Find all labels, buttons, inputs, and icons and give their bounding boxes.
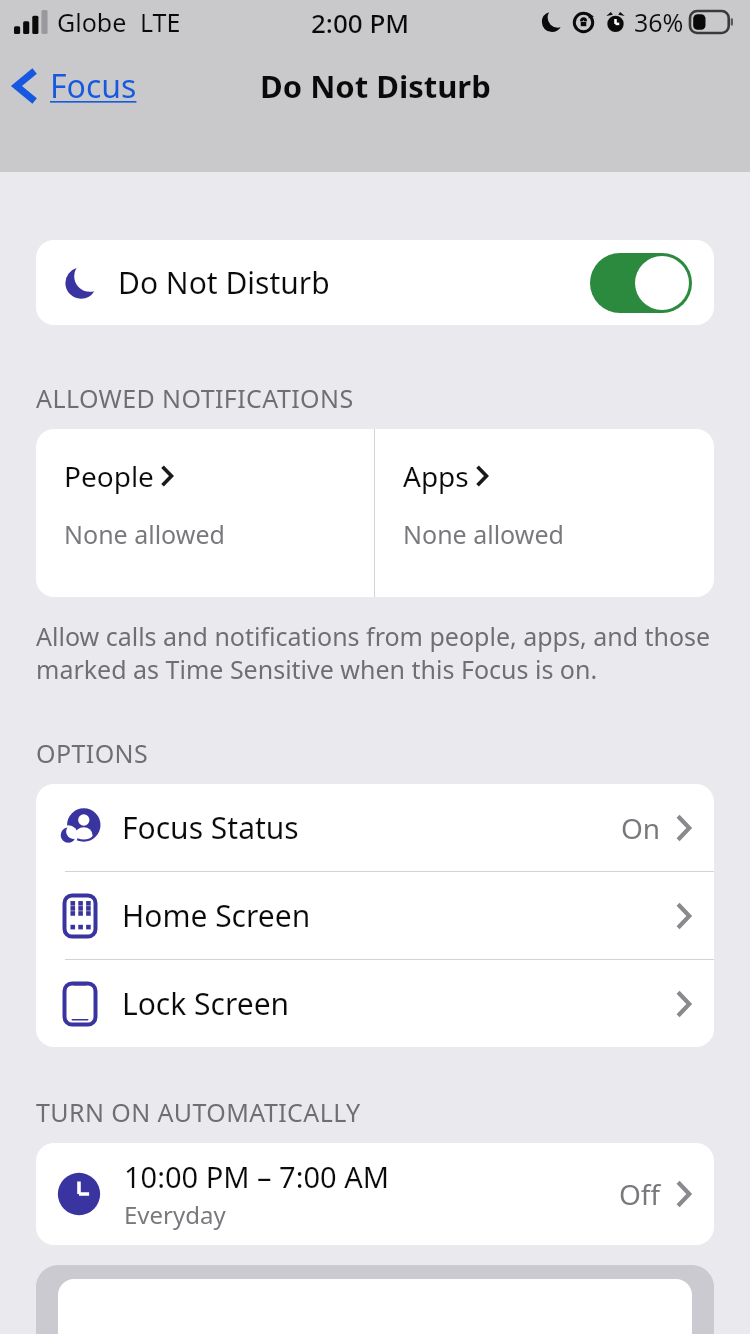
button[interactable]: Focus Status: [36, 784, 714, 871]
staticText: LTE: [140, 5, 181, 39]
button[interactable]: Apps: [375, 429, 714, 597]
staticText: 10:00 PM – 7:00 AM: [124, 1157, 390, 1196]
staticText: None allowed: [403, 517, 564, 551]
staticText: ALLOWED NOTIFICATIONS: [36, 381, 354, 415]
staticText: Focus Status: [122, 807, 299, 848]
staticText: Off: [619, 1175, 661, 1213]
other: Lock Screen: [63, 982, 97, 1026]
staticText: Everyday: [124, 1198, 226, 1231]
button[interactable]: Do Not Disturb toggle, on: [590, 253, 692, 313]
staticText: Lock Screen: [122, 983, 290, 1024]
staticText: On: [621, 809, 661, 847]
staticText: OPTIONS: [36, 736, 149, 770]
staticText: Apps: [403, 457, 469, 495]
staticText: 2:00 PM: [311, 5, 410, 40]
staticText: Do Not Disturb: [260, 65, 491, 107]
other: Schedule: [56, 1171, 102, 1217]
button[interactable]: People: [36, 429, 374, 597]
staticText: People: [64, 457, 154, 495]
button[interactable]: Home Screen: [36, 872, 714, 959]
button[interactable]: Focus: [0, 56, 147, 116]
staticText: Focus: [50, 64, 137, 108]
staticText: None allowed: [64, 517, 225, 551]
button[interactable]: Do Not Disturb: [36, 240, 714, 325]
button[interactable]: Lock Screen: [36, 960, 714, 1047]
staticText: Home Screen: [122, 895, 311, 936]
staticText: 36%: [634, 5, 684, 39]
other: Focus Status: [59, 807, 101, 849]
button[interactable]: Schedule: [36, 1143, 714, 1245]
staticText: Do Not Disturb: [118, 262, 330, 303]
staticText: TURN ON AUTOMATICALLY: [36, 1095, 361, 1129]
other: Home Screen: [63, 894, 97, 938]
staticText: Globe: [57, 5, 127, 39]
staticText: Allow calls and notifications from peopl…: [36, 619, 714, 686]
